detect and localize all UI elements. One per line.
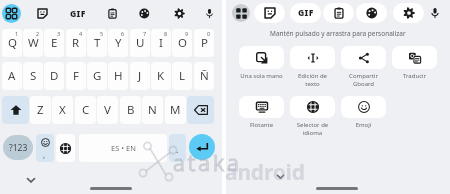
staticText: X xyxy=(59,102,66,118)
staticText: , xyxy=(43,149,46,160)
button[interactable]: R xyxy=(66,29,86,57)
button[interactable]: G xyxy=(87,62,107,90)
staticText: W xyxy=(28,35,39,51)
button[interactable]: Emoji xyxy=(36,134,54,162)
button[interactable]: Voice input xyxy=(200,4,219,23)
staticText: GIF xyxy=(298,7,314,19)
staticText: R xyxy=(72,35,80,51)
button[interactable]: Hide keyboard xyxy=(22,171,39,188)
staticText: . xyxy=(176,143,179,155)
button[interactable]: Ñ xyxy=(194,62,214,90)
button[interactable]: B xyxy=(120,96,141,124)
button[interactable]: X xyxy=(52,96,73,124)
staticText: H xyxy=(114,68,123,84)
staticText: 4 xyxy=(79,30,83,37)
button[interactable]: S xyxy=(23,62,43,90)
button[interactable]: M xyxy=(165,96,186,124)
button[interactable]: Shift xyxy=(2,96,29,124)
button[interactable]: W xyxy=(23,29,43,57)
button[interactable]: Y xyxy=(108,29,128,57)
staticText: C xyxy=(82,102,90,118)
staticText: 7 xyxy=(143,30,147,37)
staticText: 6 xyxy=(121,30,125,37)
button[interactable]: Hide keyboard xyxy=(272,168,288,184)
staticText: Traducir xyxy=(392,72,437,80)
button[interactable]: Q xyxy=(2,29,22,57)
button[interactable]: H xyxy=(108,62,128,90)
staticText: B xyxy=(127,102,135,118)
staticText: S xyxy=(30,68,37,84)
staticText: 2 xyxy=(36,30,40,37)
staticText: Ñ xyxy=(200,68,209,84)
button[interactable]: Backspace xyxy=(187,96,214,124)
button[interactable]: Settings xyxy=(170,4,189,23)
button[interactable]: Change language xyxy=(56,134,75,162)
staticText: Emoji xyxy=(341,121,386,129)
button[interactable]: Emoji xyxy=(341,96,386,129)
button[interactable]: Enter xyxy=(189,134,215,160)
staticText: J xyxy=(138,68,142,84)
staticText: 9 xyxy=(185,30,189,37)
staticText: ES • EN xyxy=(111,143,136,153)
staticText: ataka xyxy=(173,147,242,177)
button[interactable]: U xyxy=(130,29,150,57)
button[interactable]: F xyxy=(66,62,86,90)
button[interactable]: Una sola mano xyxy=(239,46,284,80)
button[interactable]: D xyxy=(44,62,64,90)
button[interactable]: P xyxy=(194,29,214,57)
button[interactable]: I xyxy=(151,29,171,57)
button[interactable]: L xyxy=(172,62,192,90)
button[interactable]: Themes xyxy=(356,3,387,23)
staticText: 1 xyxy=(15,30,19,37)
button[interactable]: J xyxy=(130,62,150,90)
button[interactable]: Clipboard xyxy=(323,3,354,23)
staticText: Z xyxy=(37,102,44,118)
button[interactable]: Themes xyxy=(135,4,154,23)
staticText: 3 xyxy=(57,30,61,37)
staticText: Selector de idioma xyxy=(290,121,335,137)
staticText: 5 xyxy=(100,30,104,37)
staticText: Mantén pulsado y arrastra para personali… xyxy=(270,29,406,38)
button[interactable]: E xyxy=(44,29,64,57)
staticText: L xyxy=(179,68,186,84)
button[interactable]: Voice input xyxy=(426,4,444,22)
button[interactable]: Traducir xyxy=(392,46,437,80)
button[interactable]: Flotante xyxy=(239,96,284,129)
staticText: 8 xyxy=(164,30,168,37)
button[interactable]: V xyxy=(97,96,118,124)
staticText: M xyxy=(170,102,181,118)
button[interactable]: GIF xyxy=(290,3,321,23)
staticText: Compartir Gboard xyxy=(341,72,386,88)
staticText: ?123 xyxy=(9,142,28,154)
button[interactable]: Z xyxy=(30,96,51,124)
button[interactable]: Stickers xyxy=(33,4,52,23)
button[interactable]: N xyxy=(142,96,163,124)
button[interactable]: ?123 xyxy=(3,135,33,160)
staticText: E xyxy=(51,35,58,51)
button[interactable]: ES • EN xyxy=(79,134,167,162)
button[interactable]: Stickers xyxy=(254,3,285,23)
staticText: P xyxy=(201,35,208,51)
staticText: Una sola mano xyxy=(239,72,284,80)
button[interactable]: Toolbar xyxy=(2,4,21,23)
button[interactable]: Toolbar xyxy=(232,4,250,22)
staticText: T xyxy=(94,35,101,51)
staticText: GIF xyxy=(70,8,86,20)
button[interactable]: GIF xyxy=(68,4,87,23)
button[interactable]: Clipboard xyxy=(103,4,122,23)
button[interactable]: Settings xyxy=(393,3,424,23)
button[interactable]: Edición de texto xyxy=(290,46,335,88)
staticText: D xyxy=(50,68,59,84)
button[interactable]: Compartir Gboard xyxy=(341,46,386,88)
button[interactable]: O xyxy=(172,29,192,57)
staticText: O xyxy=(178,35,187,51)
button[interactable]: A xyxy=(2,62,22,90)
button[interactable]: . xyxy=(169,134,186,162)
button[interactable]: T xyxy=(87,29,107,57)
staticText: 0 xyxy=(207,30,211,37)
staticText: V xyxy=(104,102,111,118)
button[interactable]: K xyxy=(151,62,171,90)
button[interactable]: Selector de idioma xyxy=(290,96,335,137)
staticText: Y xyxy=(115,35,122,51)
button[interactable]: C xyxy=(75,96,96,124)
